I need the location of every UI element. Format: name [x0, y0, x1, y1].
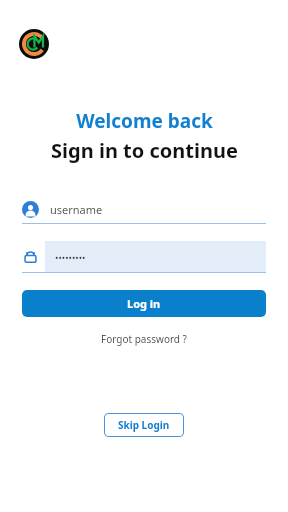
- staticText: username: [50, 202, 103, 217]
- staticText: Sign in to continue: [51, 137, 238, 164]
- staticText: Log in: [127, 296, 161, 311]
- other: Password: [22, 248, 39, 265]
- button[interactable]: Username: [22, 195, 266, 223]
- other: Username: [22, 201, 39, 218]
- staticText: Welcome back: [76, 108, 213, 134]
- button[interactable]: Forgot password ?: [95, 329, 193, 349]
- staticText: Skip Login: [118, 418, 170, 432]
- button[interactable]: Log in: [22, 290, 266, 317]
- button[interactable]: Skip Login: [104, 413, 184, 437]
- staticText: Forgot password ?: [101, 332, 187, 346]
- staticText: •••••••••: [55, 251, 86, 263]
- button[interactable]: Password: [22, 241, 266, 272]
